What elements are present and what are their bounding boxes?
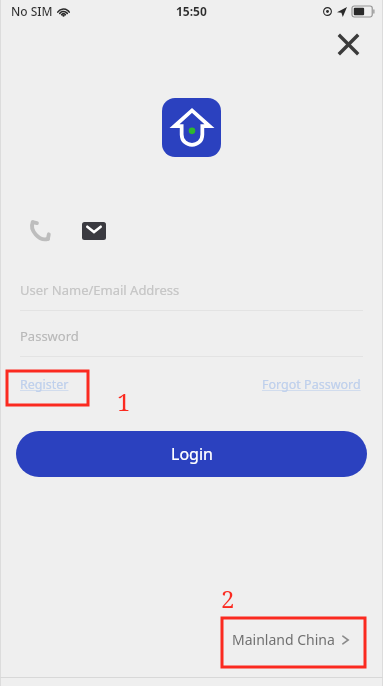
button[interactable]: Password xyxy=(20,316,363,357)
button[interactable]: Forgot Password xyxy=(262,376,361,393)
staticText: 2 xyxy=(221,582,235,615)
button[interactable]: Mainland China xyxy=(232,630,349,649)
staticText: Mainland China xyxy=(232,630,335,649)
button[interactable]: Phone login xyxy=(22,213,58,249)
staticText: Register xyxy=(20,376,69,393)
staticText: No SIM xyxy=(11,3,53,19)
button[interactable]: Email login xyxy=(76,213,112,249)
staticText: Login xyxy=(171,443,213,465)
staticText: Password xyxy=(20,327,79,345)
button[interactable]: Close xyxy=(329,25,367,63)
button[interactable]: Login xyxy=(16,431,367,477)
staticText: 15:50 xyxy=(176,3,207,19)
staticText: Forgot Password xyxy=(262,376,361,393)
staticText: 1 xyxy=(117,385,131,418)
button[interactable]: Register xyxy=(20,376,69,393)
button[interactable]: User Name/Email Address xyxy=(20,270,363,311)
staticText: User Name/Email Address xyxy=(20,281,180,299)
